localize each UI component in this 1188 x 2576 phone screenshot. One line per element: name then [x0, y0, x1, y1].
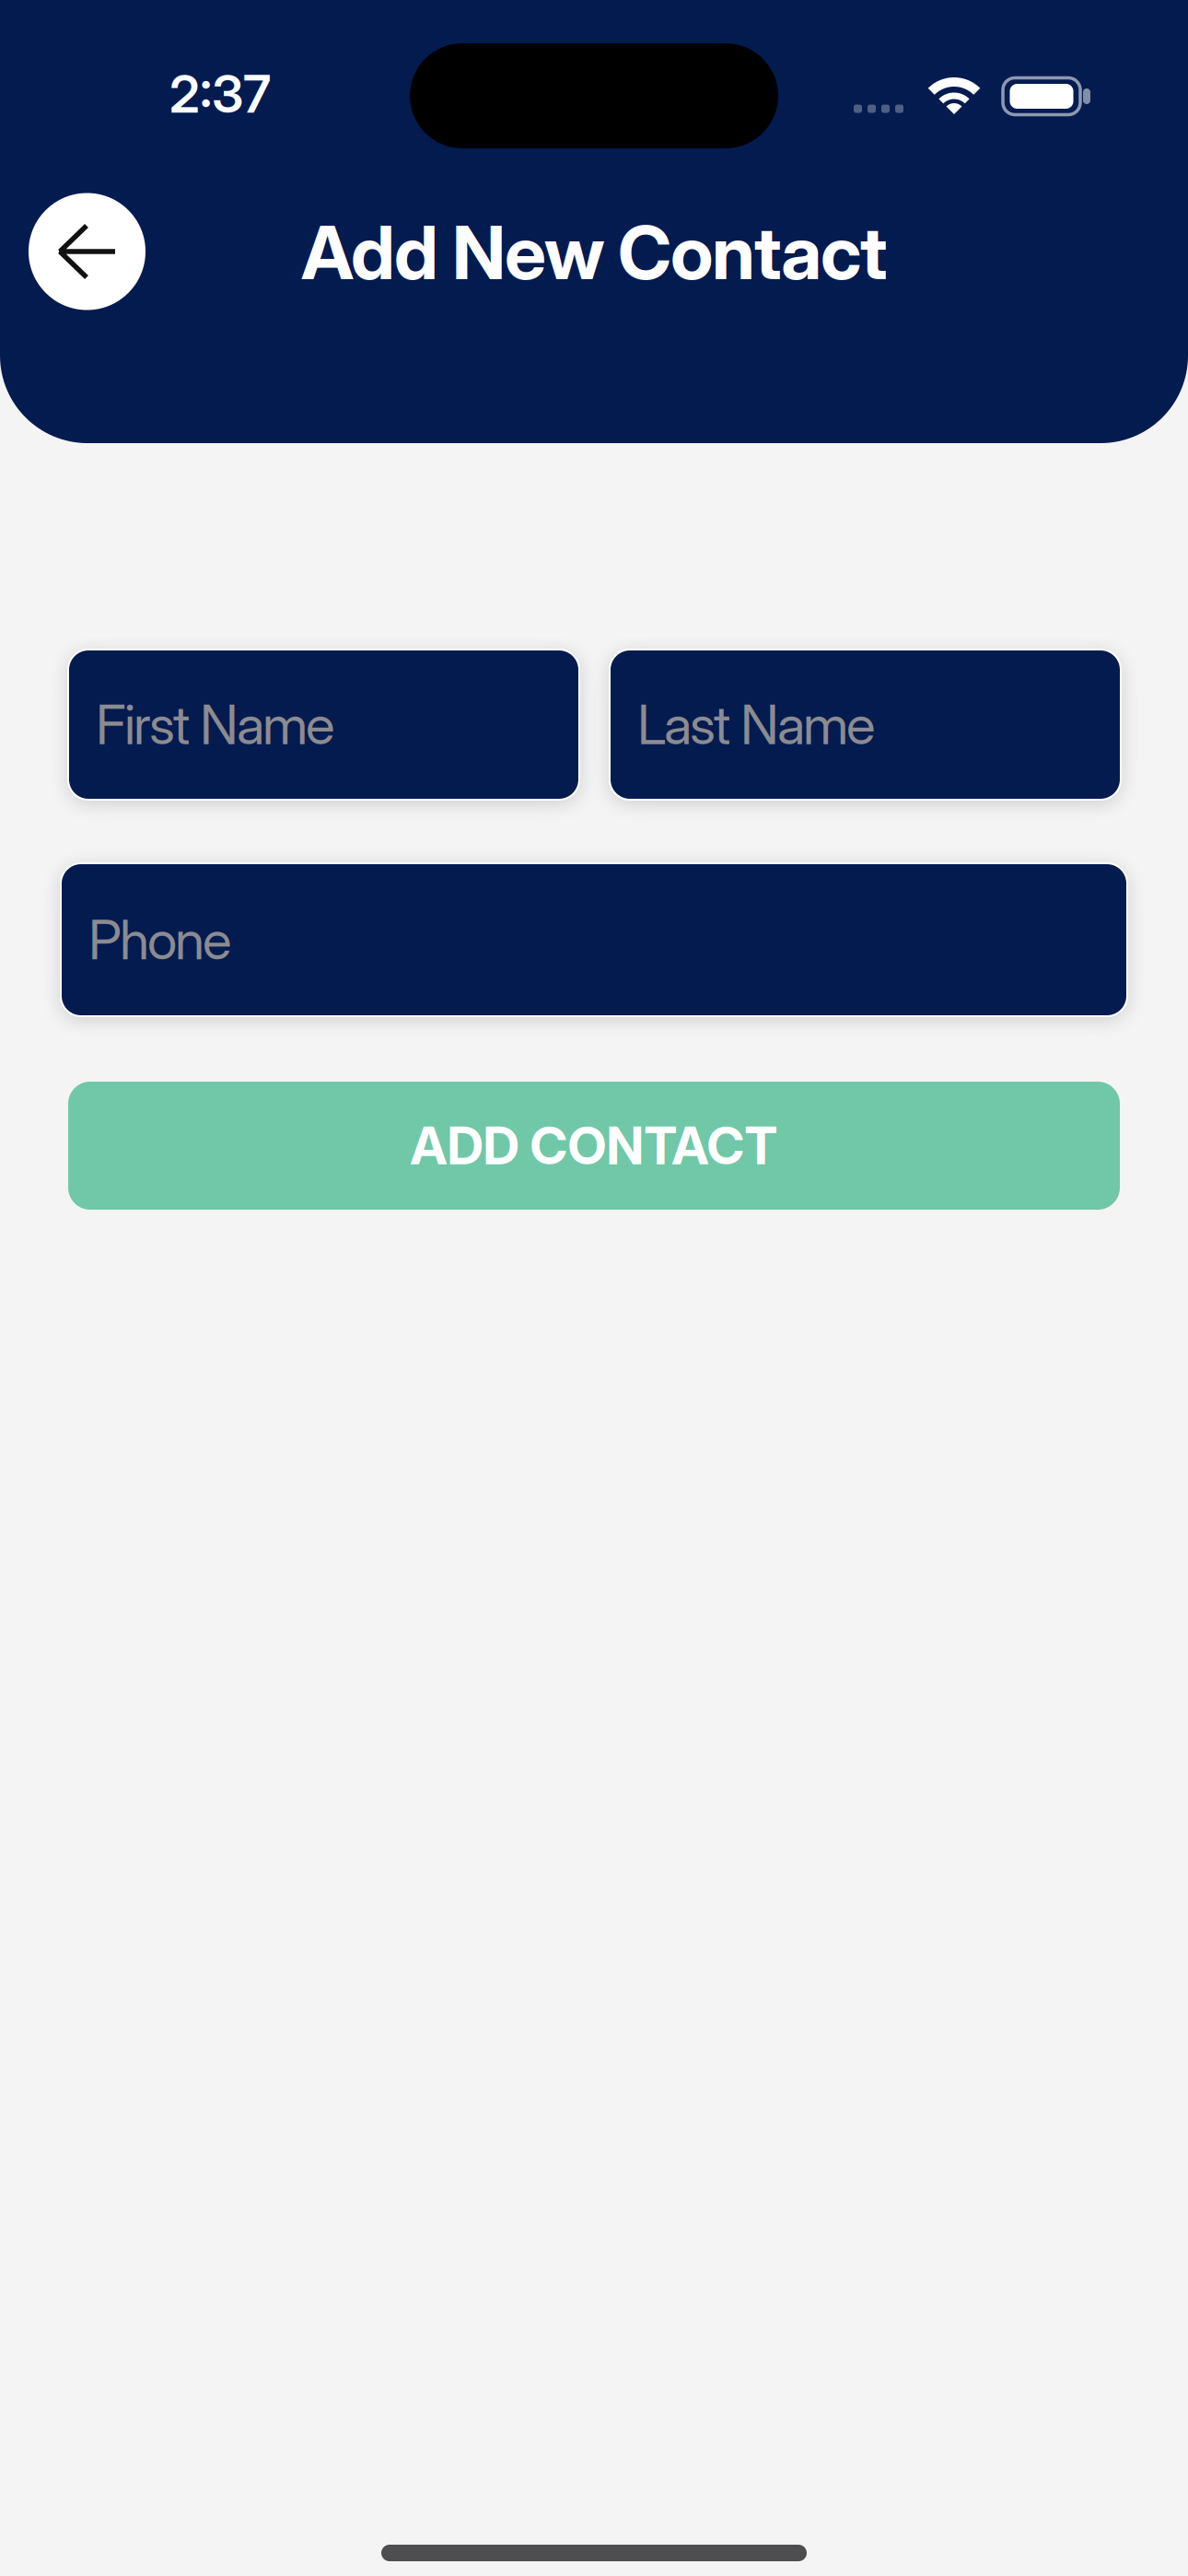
button[interactable]: Last Name	[610, 650, 1121, 800]
staticText: First Name	[96, 692, 334, 757]
button[interactable]: ADD CONTACT	[68, 1082, 1120, 1210]
button[interactable]: Back	[29, 193, 146, 310]
staticText: Last Name	[637, 692, 875, 757]
button[interactable]: Phone	[61, 863, 1127, 1016]
staticText: 2:37	[169, 63, 271, 125]
button[interactable]: First Name	[68, 650, 579, 800]
staticText: Add New Contact	[301, 208, 887, 297]
staticText: ADD CONTACT	[410, 1114, 778, 1177]
staticText: Phone	[88, 907, 231, 972]
